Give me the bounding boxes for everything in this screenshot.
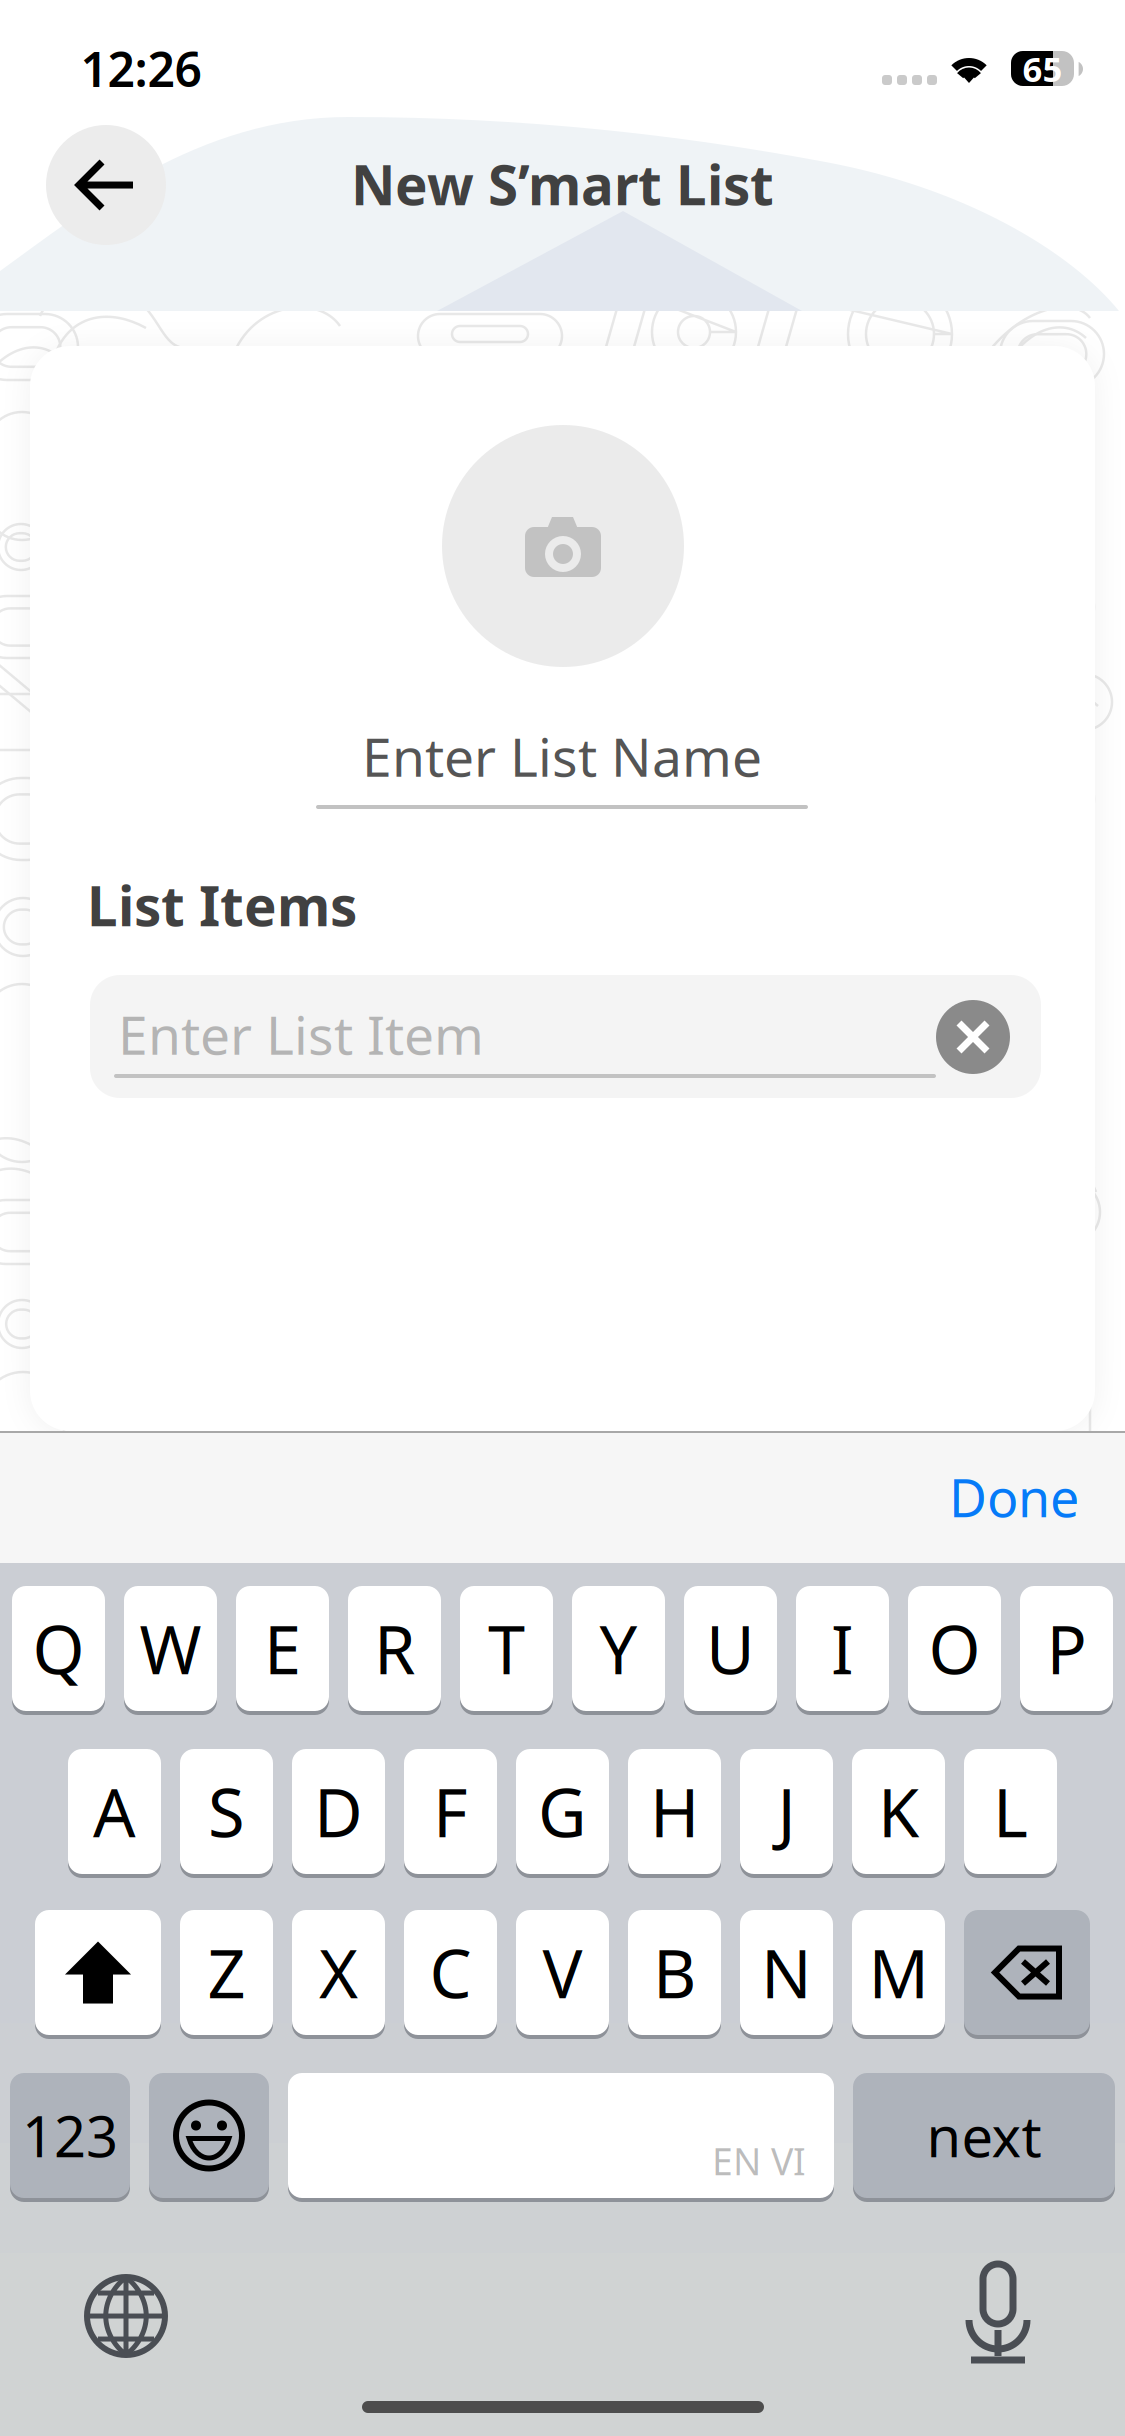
staticText: 12:26 — [80, 37, 201, 100]
staticText: K — [878, 1767, 919, 1856]
staticText: D — [314, 1767, 363, 1856]
staticText: S — [208, 1767, 245, 1856]
staticText: V — [542, 1928, 582, 2017]
staticText: H — [650, 1767, 699, 1856]
button[interactable]: J — [740, 1747, 833, 1876]
staticText: F — [433, 1767, 468, 1856]
staticText: Z — [207, 1928, 245, 2017]
staticText: Enter List Item — [118, 999, 484, 1069]
staticText: Done — [949, 1462, 1079, 1532]
button[interactable]: U — [684, 1584, 777, 1713]
button[interactable]: Delete — [964, 1908, 1090, 2037]
button[interactable]: space — [288, 2071, 834, 2200]
button[interactable]: Z — [180, 1908, 273, 2037]
staticText: 123 — [22, 2098, 118, 2173]
button[interactable]: M — [852, 1908, 945, 2037]
button[interactable]: C — [404, 1908, 497, 2037]
staticText: P — [1046, 1604, 1086, 1693]
button[interactable]: V — [516, 1908, 609, 2037]
button[interactable]: Back — [46, 125, 166, 245]
staticText: G — [538, 1767, 587, 1856]
button[interactable]: Enter List Name — [316, 724, 808, 804]
button[interactable]: N — [740, 1908, 833, 2037]
staticText: L — [993, 1767, 1028, 1856]
button[interactable]: K — [852, 1747, 945, 1876]
staticText: T — [488, 1604, 525, 1693]
staticText: W — [139, 1604, 201, 1693]
staticText: New S’mart List — [351, 148, 774, 220]
button[interactable]: Y — [572, 1584, 665, 1713]
button[interactable]: F — [404, 1747, 497, 1876]
staticText: X — [319, 1928, 358, 2017]
button[interactable]: Clear list item — [90, 975, 1041, 1098]
staticText: I — [831, 1604, 854, 1693]
button[interactable]: L — [964, 1747, 1057, 1876]
button[interactable]: Next keyboard — [41, 2261, 211, 2371]
button[interactable]: E — [236, 1584, 329, 1713]
staticText: N — [761, 1928, 812, 2017]
button[interactable]: S — [180, 1747, 273, 1876]
staticText: R — [374, 1604, 415, 1693]
button[interactable]: R — [348, 1584, 441, 1713]
button[interactable]: 123 — [10, 2071, 130, 2200]
button[interactable]: Shift — [35, 1908, 161, 2037]
button[interactable]: Done — [929, 1431, 1099, 1563]
button[interactable]: Add photo — [442, 425, 684, 667]
button[interactable]: D — [292, 1747, 385, 1876]
staticText: Q — [32, 1604, 84, 1693]
staticText: Enter List Name — [362, 721, 762, 791]
staticText: A — [93, 1767, 136, 1856]
button[interactable]: B — [628, 1908, 721, 2037]
button[interactable]: G — [516, 1747, 609, 1876]
staticText: C — [429, 1928, 471, 2017]
button[interactable]: Q — [12, 1584, 105, 1713]
button[interactable]: T — [460, 1584, 553, 1713]
staticText: Y — [599, 1604, 637, 1693]
staticText: J — [777, 1767, 795, 1856]
button[interactable]: O — [908, 1584, 1001, 1713]
button[interactable]: W — [124, 1584, 217, 1713]
staticText: E — [264, 1604, 301, 1693]
button[interactable]: I — [796, 1584, 889, 1713]
button[interactable]: Dictate — [913, 2259, 1083, 2369]
staticText: next — [926, 2098, 1041, 2173]
button[interactable]: A — [68, 1747, 161, 1876]
staticText: EN VI — [712, 2136, 806, 2185]
staticText: O — [928, 1604, 980, 1693]
button[interactable]: H — [628, 1747, 721, 1876]
staticText: M — [868, 1928, 928, 2017]
staticText: 65 — [1022, 45, 1062, 91]
button[interactable]: X — [292, 1908, 385, 2037]
button[interactable]: next — [853, 2071, 1115, 2200]
button[interactable]: P — [1020, 1584, 1113, 1713]
staticText: List Items — [87, 869, 357, 941]
button[interactable]: Emoji — [149, 2071, 269, 2200]
staticText: B — [653, 1928, 696, 2017]
staticText: U — [706, 1604, 755, 1693]
